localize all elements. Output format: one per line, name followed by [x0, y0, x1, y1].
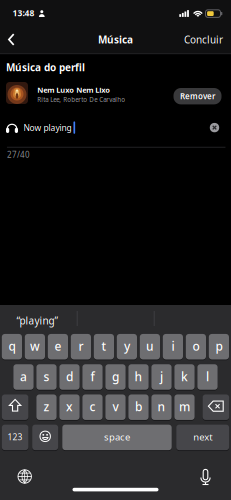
button[interactable]: o [186, 333, 206, 360]
staticText: i [171, 338, 174, 354]
button[interactable]: d [59, 364, 80, 390]
staticText: h [134, 368, 142, 384]
staticText: n [157, 399, 165, 415]
staticText: x [66, 399, 73, 415]
button[interactable]: b [128, 394, 149, 420]
staticText: next [193, 431, 212, 443]
staticText: g [112, 368, 119, 384]
staticText: q [8, 338, 15, 354]
button[interactable]: f [82, 364, 103, 390]
button[interactable]: m [174, 394, 195, 420]
button[interactable]: x [59, 394, 80, 420]
staticText: space [104, 431, 130, 443]
button[interactable]: Shift [2, 394, 28, 420]
staticText: 13:48 [12, 7, 34, 19]
button[interactable]: w [25, 333, 45, 360]
staticText: z [43, 399, 49, 415]
button[interactable]: r [71, 333, 91, 360]
button[interactable]: next [176, 424, 229, 451]
button[interactable]: Remover [173, 88, 221, 104]
button[interactable]: g [105, 364, 126, 390]
button[interactable]: Dictation [193, 464, 217, 488]
button[interactable]: q [2, 333, 22, 360]
staticText: m [179, 399, 190, 415]
staticText: c [89, 399, 95, 415]
button[interactable]: h [128, 364, 149, 390]
staticText: a [20, 368, 27, 384]
button[interactable]: “playing” [0, 308, 74, 332]
button[interactable]: n [151, 394, 172, 420]
button[interactable]: l [197, 364, 218, 390]
button[interactable]: y [117, 333, 137, 360]
staticText: Concluir [184, 33, 223, 46]
staticText: 27/40 [7, 149, 30, 160]
button[interactable]: c [82, 394, 103, 420]
staticText: 123 [8, 431, 23, 443]
button[interactable]: z [36, 394, 57, 420]
button[interactable]: Concluir [178, 29, 228, 49]
staticText: Rita Lee, Roberto De Carvalho [37, 95, 125, 104]
staticText: r [78, 338, 83, 354]
staticText: v [112, 399, 118, 415]
button[interactable]: u [140, 333, 160, 360]
staticText: w [30, 338, 40, 354]
staticText: p [215, 338, 222, 354]
button[interactable]: Song caption text field [0, 115, 200, 141]
button[interactable]: Emoji [32, 424, 58, 451]
staticText: f [90, 368, 94, 384]
button[interactable]: space [62, 424, 172, 451]
button[interactable]: p [209, 333, 229, 360]
button[interactable]: k [174, 364, 195, 390]
staticText: Remover [180, 91, 215, 101]
button[interactable]: s [36, 364, 57, 390]
button[interactable]: Switch keyboard [13, 464, 37, 488]
button[interactable]: e [48, 333, 68, 360]
staticText: Nem Luxo Nem Lixo [37, 85, 110, 95]
button[interactable]: j [151, 364, 172, 390]
staticText: Música [98, 33, 133, 46]
staticText: e [54, 338, 61, 354]
button[interactable]: Back [2, 30, 20, 48]
staticText: k [181, 368, 188, 384]
staticText: y [124, 338, 130, 354]
staticText: l [206, 368, 209, 384]
staticText: o [192, 338, 199, 354]
staticText: u [146, 338, 154, 354]
staticText: t [101, 338, 106, 354]
button[interactable]: t [94, 333, 114, 360]
button[interactable]: i [163, 333, 183, 360]
staticText: “playing” [16, 314, 58, 327]
button[interactable]: a [13, 364, 34, 390]
staticText: d [66, 368, 73, 384]
staticText: Now playing [23, 122, 71, 133]
button[interactable]: Clear text [208, 121, 221, 134]
staticText: j [160, 368, 163, 384]
button[interactable]: v [105, 394, 126, 420]
button[interactable]: Delete [203, 394, 229, 420]
button[interactable]: 123 [2, 424, 28, 451]
staticText: Música do perfil [6, 61, 85, 74]
staticText: s [43, 368, 49, 384]
staticText: b [135, 399, 142, 415]
